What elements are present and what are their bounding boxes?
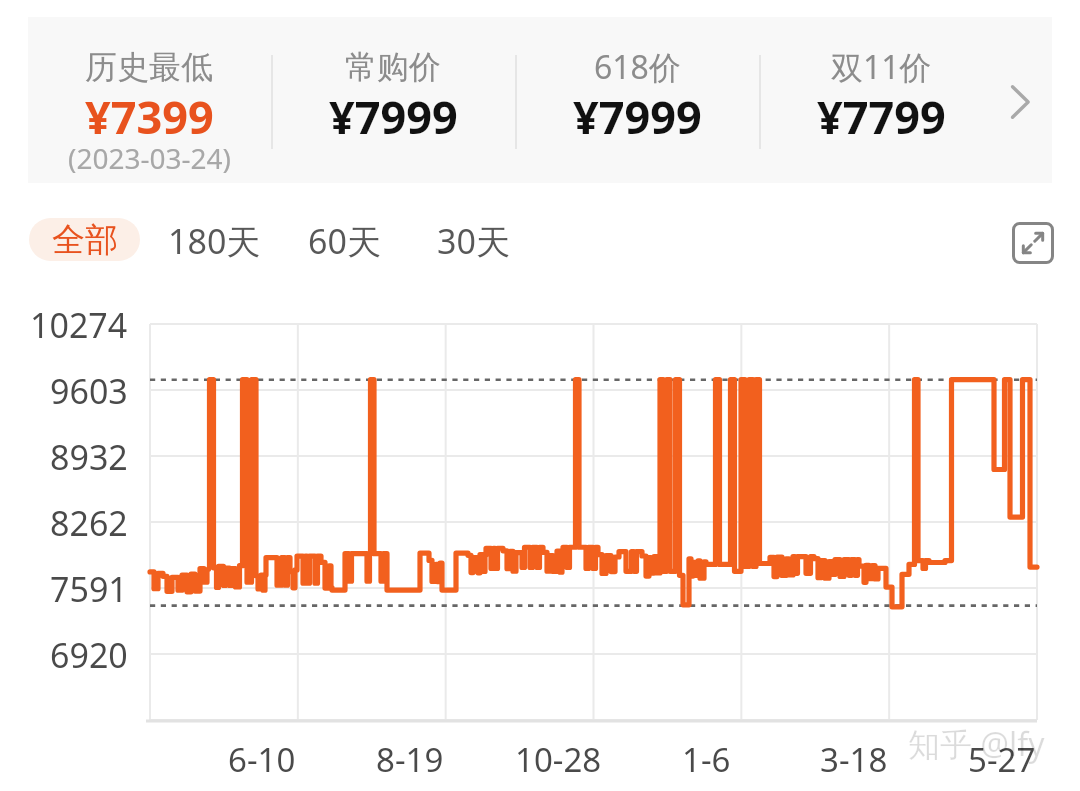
staticText: 30天 (437, 218, 510, 261)
staticText: ¥7999 (329, 86, 458, 142)
staticText: 全部 (52, 219, 118, 261)
staticText: 8-19 (376, 737, 444, 781)
staticText: 3-18 (820, 737, 888, 781)
staticText: 10274 (30, 302, 128, 346)
staticText: 常购价 (345, 47, 441, 87)
staticText: (2023-03-24) (68, 139, 231, 177)
button[interactable]: 常购价 (281, 17, 505, 183)
button[interactable]: 60天 (296, 218, 393, 261)
button[interactable]: 双11价 (769, 17, 993, 183)
staticText: 知乎 @lfy (908, 722, 1045, 766)
staticText: ¥7999 (573, 86, 702, 142)
staticText: 9603 (50, 368, 128, 412)
button[interactable]: 30天 (425, 218, 522, 261)
staticText: 10-28 (515, 737, 602, 781)
staticText: ¥7799 (817, 86, 946, 142)
staticText: 历史最低 (85, 47, 213, 87)
button[interactable]: More price details (990, 72, 1050, 132)
button[interactable]: 180天 (155, 218, 273, 261)
staticText: 8932 (50, 434, 128, 478)
staticText: 618价 (594, 45, 681, 89)
staticText: 6920 (50, 632, 128, 676)
button[interactable]: 全部 (29, 218, 140, 261)
staticText: 5-27 (968, 737, 1036, 781)
button[interactable]: 618价 (525, 17, 749, 183)
button[interactable]: 历史最低 (37, 17, 261, 183)
staticText: 1-6 (682, 737, 731, 781)
staticText: 7591 (50, 566, 128, 610)
staticText: ¥7399 (85, 86, 214, 142)
button[interactable]: Fullscreen chart (1011, 221, 1055, 265)
staticText: 60天 (308, 218, 381, 261)
staticText: 双11价 (831, 45, 932, 89)
staticText: 6-10 (228, 737, 296, 781)
staticText: 180天 (168, 218, 261, 261)
staticText: 8262 (50, 500, 128, 544)
